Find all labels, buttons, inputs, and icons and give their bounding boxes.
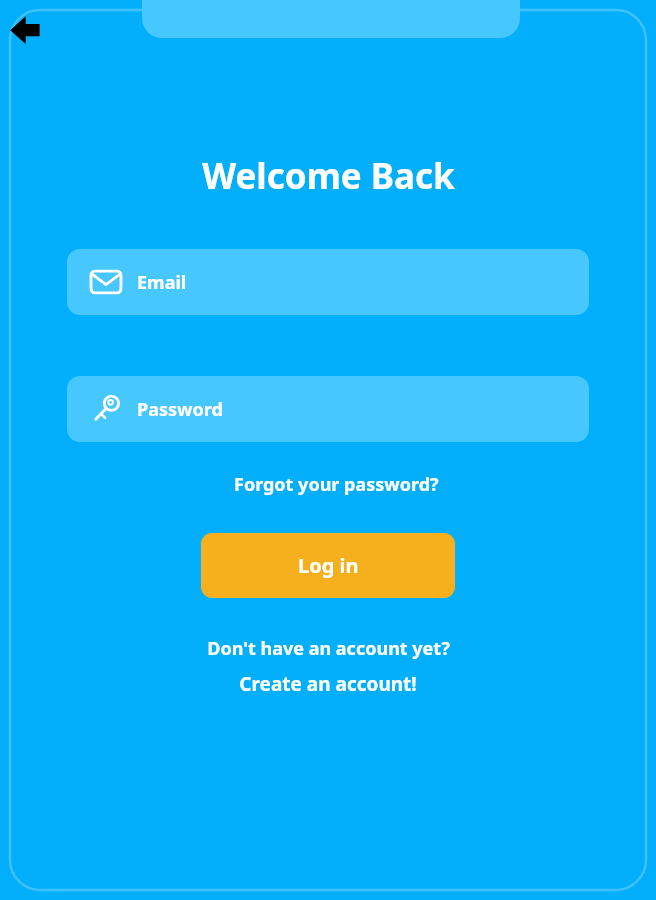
button[interactable]: Back [6,10,48,52]
staticText: Password [137,397,223,422]
staticText: Welcome Back [202,152,455,200]
button[interactable]: Log in [201,533,455,598]
staticText: Don't have an account yet? [207,636,450,661]
staticText: Log in [298,552,359,579]
button[interactable]: Create an account! [233,669,423,699]
staticText: Forgot your password? [234,472,439,497]
button[interactable]: Email field [67,249,589,315]
button[interactable]: Password field [67,376,589,442]
staticText: Email [137,270,187,295]
button[interactable]: Forgot your password? [228,468,445,501]
staticText: Create an account! [239,671,417,697]
